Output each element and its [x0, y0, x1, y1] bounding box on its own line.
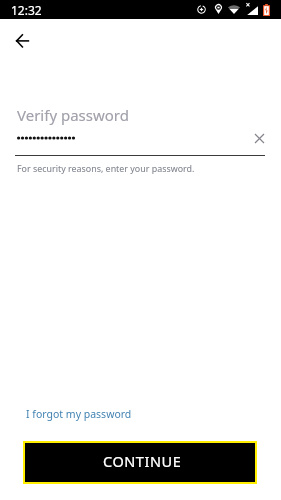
staticText: For security reasons, enter your passwor…	[17, 162, 195, 174]
button[interactable]: Clear password	[245, 124, 273, 152]
button[interactable]: Back	[4, 22, 40, 58]
staticText: 12:32	[11, 2, 42, 18]
staticText: CONTINUE	[103, 451, 182, 471]
button[interactable]: CONTINUE	[25, 443, 255, 482]
staticText: I forgot my password	[26, 407, 132, 421]
button[interactable]: I forgot my password	[18, 402, 140, 426]
staticText: Verify password	[17, 105, 129, 125]
